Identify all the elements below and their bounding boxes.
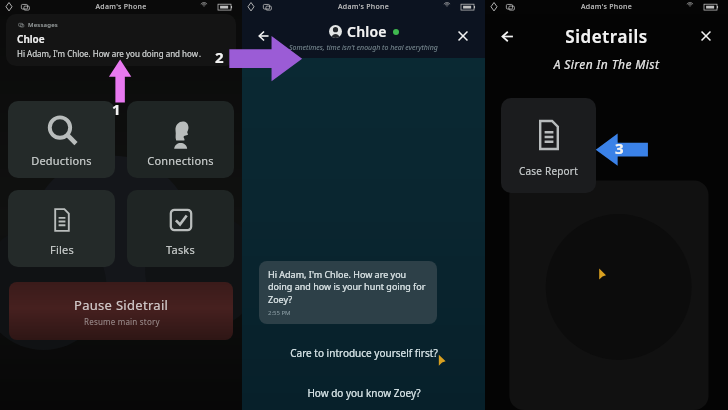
staticText: How do you know Zoey? — [307, 386, 421, 400]
staticText: Chloe — [347, 22, 387, 41]
button[interactable]: Connections — [127, 101, 234, 178]
staticText: Deductions — [31, 153, 92, 168]
staticText: Sometimes, time isn't enough to heal eve… — [289, 43, 438, 53]
staticText: A Siren In The Mist — [485, 56, 728, 72]
button[interactable]: Case Report — [501, 98, 596, 193]
button[interactable]: Close — [451, 24, 475, 48]
staticText: Connections — [147, 153, 214, 168]
button[interactable]: Deductions — [8, 101, 115, 178]
staticText: Hi Adam, I'm Chloe. How are you doing an… — [268, 268, 428, 306]
staticText: 1 — [112, 99, 121, 119]
staticText: 2:55 PM — [268, 309, 291, 317]
button[interactable]: Close — [694, 24, 718, 48]
button[interactable]: Back — [252, 23, 278, 49]
staticText: Pause Sidetrail — [74, 296, 169, 314]
button[interactable]: Messages — [6, 14, 236, 66]
staticText: 2 — [215, 47, 224, 67]
staticText: Adam's Phone — [0, 2, 242, 12]
button[interactable]: Care to introduce yourself first? — [242, 346, 485, 360]
staticText: Adam's Phone — [242, 2, 485, 12]
button[interactable]: Hi Adam, I'm Chloe. How are you doing an… — [259, 261, 437, 324]
staticText: Tasks — [166, 242, 195, 257]
staticText: Sidetrails — [565, 25, 648, 48]
staticText: Resume main story — [84, 316, 160, 327]
button[interactable]: Files — [8, 190, 115, 267]
staticText: Files — [50, 242, 74, 257]
button[interactable]: Back — [495, 23, 521, 49]
staticText: Adam's Phone — [485, 2, 728, 12]
button[interactable]: Pause Sidetrail — [9, 282, 233, 340]
staticText: Chloe — [17, 32, 45, 46]
staticText: Case Report — [519, 164, 578, 178]
staticText: Care to introduce yourself first? — [290, 346, 438, 360]
staticText: Messages — [28, 21, 58, 29]
button[interactable]: Tasks — [127, 190, 234, 267]
button[interactable]: How do you know Zoey? — [242, 386, 485, 400]
staticText: Hi Adam, I'm Chloe. How are you doing an… — [17, 48, 203, 59]
staticText: 3 — [615, 138, 624, 158]
